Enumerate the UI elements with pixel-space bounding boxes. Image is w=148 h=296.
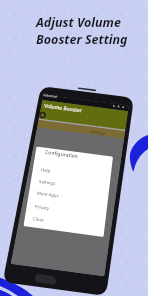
- staticText: STOP app: [91, 130, 106, 136]
- staticText: Help: [41, 166, 51, 174]
- staticText: Privacy: [35, 203, 50, 211]
- staticText: Adjust Volume Booster Setting: [36, 14, 128, 47]
- staticText: Telkomsel: [43, 93, 58, 99]
- staticText: Settings: [39, 178, 56, 186]
- staticText: Close: [33, 215, 44, 223]
- staticText: Configuration: [45, 149, 79, 160]
- staticText: Volume Booster: [44, 102, 83, 114]
- staticText: More Apps: [37, 190, 59, 198]
